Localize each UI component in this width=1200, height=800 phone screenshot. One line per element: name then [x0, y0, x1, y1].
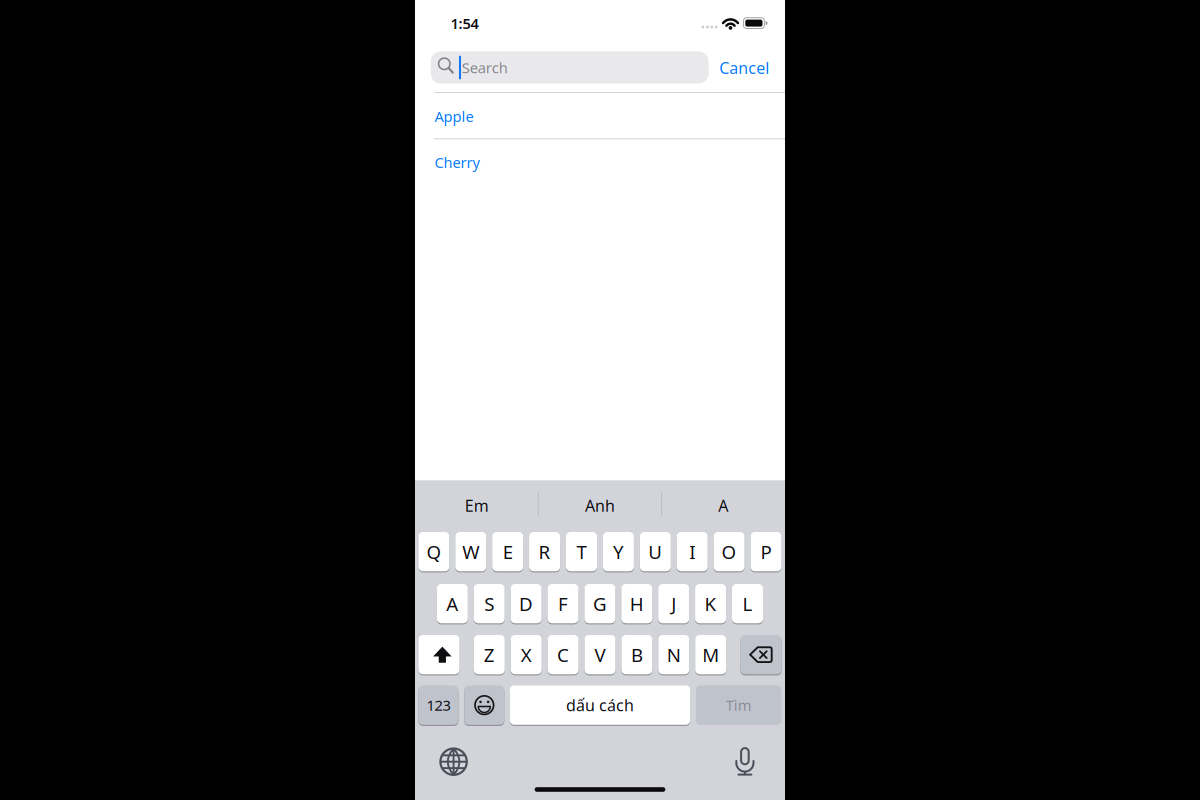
button[interactable]: A [437, 583, 468, 624]
button[interactable]: A [662, 486, 784, 525]
button[interactable]: Em [416, 486, 538, 525]
staticText: V [594, 642, 605, 667]
staticText: R [539, 539, 551, 564]
staticText: H [630, 591, 644, 616]
button[interactable]: N [658, 634, 689, 675]
staticText: A [446, 591, 458, 616]
staticText: Search [462, 58, 508, 77]
button[interactable]: B [621, 634, 652, 675]
staticText: L [742, 591, 752, 616]
button[interactable]: K [695, 583, 726, 624]
staticText: S [484, 591, 494, 616]
button[interactable]: Shift [418, 634, 459, 675]
staticText: D [519, 591, 533, 616]
button[interactable]: E [492, 531, 523, 572]
staticText: Q [426, 539, 441, 564]
staticText: Y [613, 539, 624, 564]
staticText: 1:54 [450, 14, 478, 33]
staticText: M [702, 642, 719, 667]
button[interactable]: L [732, 583, 763, 624]
button[interactable]: U [640, 531, 671, 572]
staticText: A [718, 495, 728, 516]
button[interactable]: H [621, 583, 652, 624]
staticText: F [558, 591, 568, 616]
staticText: E [503, 539, 513, 564]
button[interactable]: Next keyboard [439, 747, 469, 777]
staticText: Cancel [719, 57, 769, 78]
button[interactable]: I [677, 531, 708, 572]
button[interactable]: J [658, 583, 689, 624]
staticText: 123 [426, 695, 450, 715]
button[interactable]: F [547, 583, 578, 624]
button[interactable]: V [584, 634, 615, 675]
staticText: Apple [434, 106, 473, 126]
staticText: O [722, 539, 737, 564]
staticText: J [671, 591, 676, 616]
button[interactable]: Apple [415, 93, 785, 139]
button[interactable]: Delete [740, 634, 782, 675]
button[interactable]: 123 [418, 685, 458, 725]
staticText: Em [465, 495, 489, 516]
button[interactable]: C [548, 634, 579, 675]
staticText: K [705, 591, 717, 616]
button[interactable]: R [529, 531, 560, 572]
staticText: G [593, 591, 607, 616]
staticText: C [557, 642, 569, 667]
button[interactable]: P [750, 531, 781, 572]
button[interactable]: W [455, 531, 486, 572]
button[interactable]: D [511, 583, 542, 624]
button[interactable]: S [474, 583, 505, 624]
button[interactable]: Search [431, 51, 709, 84]
staticText: N [667, 642, 681, 667]
button[interactable]: Cherry [415, 139, 785, 185]
button[interactable]: Dictation [730, 746, 760, 776]
staticText: Anh [585, 495, 615, 516]
staticText: Tìm [726, 695, 752, 715]
button[interactable]: Cancel [719, 57, 769, 78]
staticText: W [462, 539, 479, 564]
button[interactable]: Y [603, 531, 634, 572]
staticText: U [648, 539, 662, 564]
staticText: B [631, 642, 643, 667]
button[interactable]: X [511, 634, 542, 675]
button[interactable]: Z [474, 634, 505, 675]
staticText: dấu cách [566, 694, 634, 716]
staticText: T [576, 539, 586, 564]
staticText: I [689, 539, 695, 564]
staticText: Z [484, 642, 495, 667]
staticText: P [760, 539, 771, 564]
button[interactable]: T [566, 531, 597, 572]
button[interactable]: Anh [539, 486, 661, 525]
staticText: X [521, 642, 532, 667]
button[interactable]: Tìm [696, 685, 782, 725]
button[interactable]: M [695, 634, 726, 675]
button[interactable]: O [714, 531, 745, 572]
button[interactable]: Q [418, 531, 449, 572]
button[interactable]: Emoji [464, 685, 504, 725]
button[interactable]: G [584, 583, 615, 624]
button[interactable]: dấu cách [510, 685, 690, 725]
staticText: Cherry [434, 153, 479, 172]
